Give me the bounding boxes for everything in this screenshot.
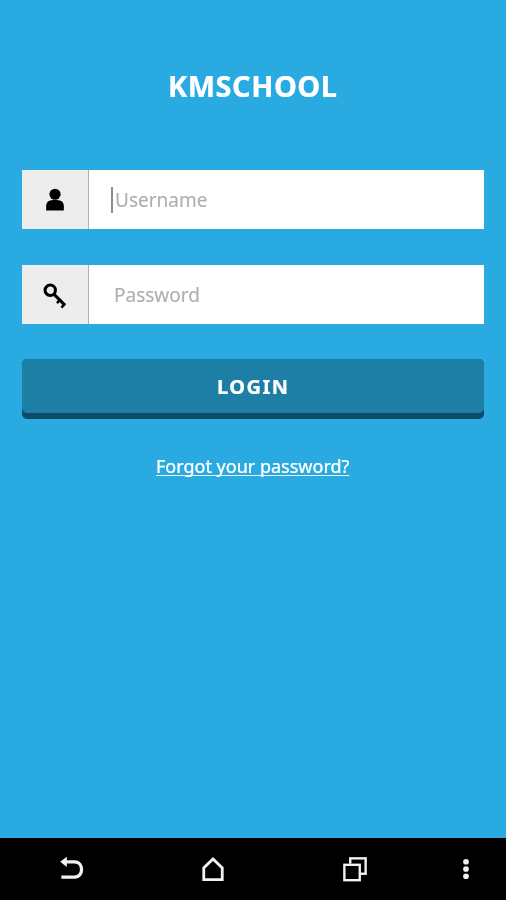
staticText: LOGIN bbox=[217, 373, 290, 400]
button[interactable]: Username bbox=[22, 170, 484, 229]
button[interactable]: Password bbox=[22, 265, 484, 324]
staticText: KMSCHOOL bbox=[168, 66, 338, 105]
button[interactable]: More options bbox=[426, 838, 506, 900]
staticText: Username bbox=[115, 187, 208, 213]
button[interactable]: Home bbox=[142, 838, 284, 900]
button[interactable]: Recent apps bbox=[284, 838, 426, 900]
button[interactable]: LOGIN bbox=[22, 359, 484, 419]
staticText: Forgot your password? bbox=[156, 454, 350, 479]
button[interactable]: Back bbox=[0, 838, 142, 900]
staticText: Password bbox=[114, 282, 200, 308]
button[interactable]: Forgot your password? bbox=[148, 449, 358, 484]
